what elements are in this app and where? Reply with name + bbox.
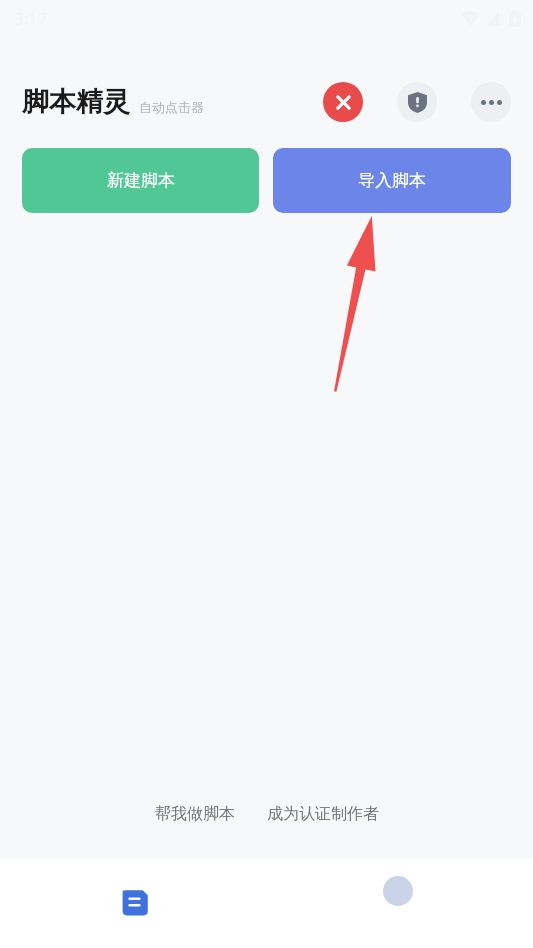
button[interactable]: Warning xyxy=(397,82,437,122)
button[interactable]: 成为认证制作者 xyxy=(261,800,385,828)
button[interactable]: Scripts xyxy=(119,883,155,919)
staticText: 脚本精灵 xyxy=(22,85,130,119)
button[interactable]: 导入脚本 xyxy=(273,148,511,213)
staticText: 成为认证制作者 xyxy=(267,804,379,824)
staticText: 自动点击器 xyxy=(139,99,204,115)
staticText: 导入脚本 xyxy=(358,170,426,191)
button[interactable]: Stop xyxy=(323,82,363,122)
button[interactable]: 帮我做脚本 xyxy=(149,800,241,828)
button[interactable]: More options xyxy=(471,82,511,122)
staticText: 帮我做脚本 xyxy=(155,804,235,824)
staticText: 新建脚本 xyxy=(107,170,175,191)
button[interactable]: 新建脚本 xyxy=(22,148,259,213)
button[interactable]: Floating button xyxy=(383,876,413,906)
